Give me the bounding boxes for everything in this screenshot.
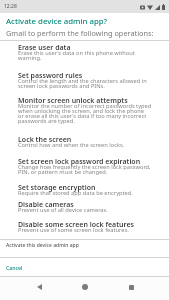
staticText: Gmail to perform the following operation… (6, 28, 154, 38)
button[interactable] (33, 281, 45, 293)
button[interactable]: Activate this device admin app (0, 240, 169, 257)
staticText: Erase this user's data on this phone wit… (18, 49, 135, 62)
button[interactable]: Cancel (0, 258, 169, 276)
staticText: Prevent use of all device cameras. (18, 206, 108, 214)
staticText: Control how and when the screen locks. (18, 141, 125, 149)
staticText: Change how frequently the screen lock pa… (18, 163, 151, 176)
staticText: Disable cameras (18, 200, 74, 210)
staticText: Activate this device admin app (6, 242, 79, 249)
staticText: Disable some screen lock features (18, 220, 134, 230)
staticText: Control the length and the characters al… (18, 77, 147, 90)
button[interactable] (79, 281, 91, 293)
button[interactable] (125, 281, 137, 293)
staticText: Set screen lock password expiration (18, 157, 141, 167)
staticText: Activate device admin app? (6, 16, 108, 27)
staticText: Set password rules (18, 71, 83, 81)
staticText: Require that stored app data be encrypte… (18, 189, 133, 197)
staticText: 12:28 (4, 3, 17, 10)
staticText: Set storage encryption (18, 183, 96, 193)
staticText: Lock the screen (18, 135, 72, 145)
staticText: Cancel (6, 264, 23, 271)
staticText: Monitor screen unlock attempts (18, 96, 128, 106)
staticText: Erase user data (18, 43, 71, 53)
staticText: Prevent use of some screen lock features… (18, 226, 129, 234)
staticText: Monitor the number of incorrect password… (18, 102, 152, 125)
